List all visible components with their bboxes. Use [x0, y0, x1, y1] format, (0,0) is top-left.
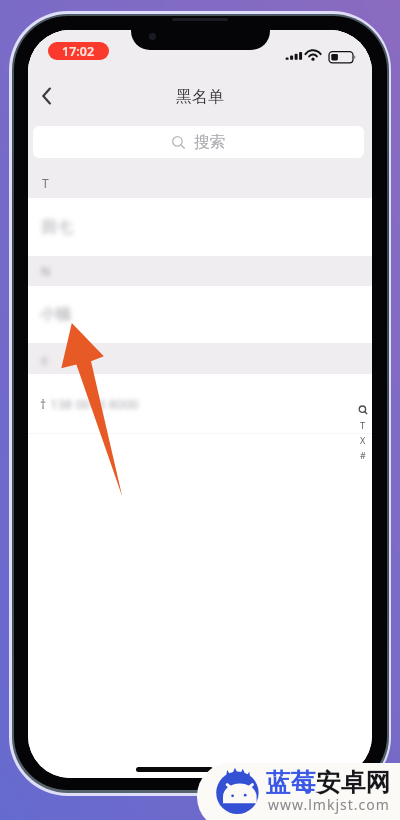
- staticText: N: [41, 263, 51, 279]
- button[interactable]: Back: [36, 82, 64, 110]
- staticText: 黑名单: [176, 87, 224, 107]
- staticText: 安卓网: [316, 767, 391, 798]
- button[interactable]: [28, 343, 372, 374]
- staticText: www.lmkjst.com: [268, 795, 390, 814]
- staticText: †: [40, 396, 47, 412]
- button[interactable]: [28, 166, 372, 198]
- staticText: T: [360, 419, 366, 431]
- button[interactable]: †: [40, 395, 139, 413]
- staticText: T: [42, 175, 49, 191]
- staticText: #: [360, 449, 366, 461]
- staticText: 蓝莓: [266, 767, 316, 798]
- button[interactable]: 搜索: [33, 126, 364, 158]
- staticText: 搜索: [194, 132, 225, 152]
- staticText: X: [360, 434, 366, 446]
- staticText: 田七: [42, 217, 73, 237]
- staticText: 小猫: [40, 304, 71, 324]
- staticText: 138 0013 8000: [50, 395, 139, 413]
- staticText: 17:02: [62, 43, 95, 60]
- button[interactable]: Alphabet index: [357, 405, 369, 461]
- staticText: X: [41, 353, 48, 368]
